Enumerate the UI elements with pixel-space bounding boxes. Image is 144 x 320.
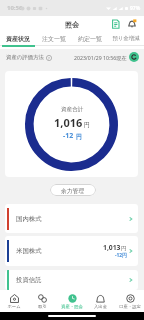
staticText: 取引	[38, 304, 47, 309]
button[interactable]: Refresh	[129, 52, 139, 62]
button[interactable]: 口座・設定	[115, 290, 144, 312]
staticText: 口座・設定	[119, 304, 141, 309]
staticText: 円	[121, 245, 127, 252]
button[interactable]: 投資信託	[5, 270, 138, 290]
staticText: 預り金増減	[112, 35, 140, 42]
staticText: 注文一覧	[42, 35, 66, 43]
staticText: 1,016	[54, 115, 83, 130]
staticText: 入出金	[94, 304, 107, 309]
button[interactable]: Documents	[110, 18, 121, 29]
button[interactable]: 国内株式	[5, 204, 138, 233]
staticText: 2023/01/29 10:56現在	[74, 54, 127, 61]
button[interactable]: 預り金増減	[108, 33, 144, 49]
button[interactable]: 取引	[28, 290, 57, 312]
staticText: 円	[84, 121, 90, 129]
button[interactable]: Help	[46, 55, 52, 61]
staticText: 円	[76, 133, 82, 141]
staticText: 照会	[65, 20, 79, 29]
staticText: ?	[48, 56, 50, 61]
staticText: 資産合計	[61, 106, 84, 113]
staticText: 約定一覧	[78, 35, 102, 43]
staticText: 1,013	[103, 243, 121, 252]
staticText: ホーム	[7, 304, 21, 309]
button[interactable]: 資産状況	[0, 33, 36, 49]
staticText: -12	[63, 131, 74, 141]
staticText: 資産状況	[6, 35, 30, 43]
button[interactable]: ホーム	[0, 290, 28, 312]
button[interactable]: 注文一覧	[36, 33, 72, 49]
button[interactable]: 約定一覧	[72, 33, 108, 49]
staticText: 資産の評価方法	[6, 54, 44, 61]
button[interactable]: Notifications	[126, 18, 137, 29]
button[interactable]: 入出金	[86, 290, 115, 312]
button[interactable]: 資産・照会	[57, 290, 86, 312]
staticText: 10:56	[7, 4, 23, 12]
staticText: 資産・照会	[61, 304, 83, 309]
button[interactable]: 余力管理	[50, 184, 96, 196]
staticText: -12円	[115, 252, 127, 259]
button[interactable]: 米国株式	[5, 236, 138, 266]
staticText: 投資信託	[16, 276, 42, 284]
staticText: 97%	[130, 5, 141, 12]
staticText: 国内株式	[16, 215, 42, 223]
staticText: 余力管理	[61, 187, 85, 194]
staticText: 米国株式	[16, 247, 42, 255]
